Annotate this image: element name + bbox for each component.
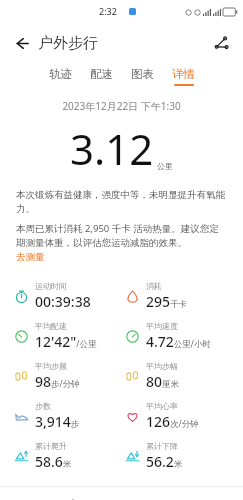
staticText: 平均步幅 — [146, 361, 178, 371]
button[interactable]: 平均步幅 — [125, 356, 237, 396]
staticText: 运动时间 — [35, 281, 67, 291]
button[interactable]: 步数 — [14, 396, 125, 436]
button[interactable]: 平均配速 — [14, 316, 125, 356]
staticText: 消耗 — [146, 281, 162, 291]
staticText: 3,914步 — [35, 412, 80, 431]
staticText: 126次/分钟 — [146, 412, 199, 431]
button[interactable]: 去测量 — [16, 251, 45, 263]
staticText: 2:32 — [99, 5, 117, 17]
staticText: 80厘米 — [146, 372, 180, 391]
staticText: 4.72公里/小时 — [146, 332, 211, 351]
button[interactable]: 运动时间 — [14, 276, 125, 316]
staticText: 3.12 — [70, 120, 154, 177]
staticText: 配速 — [90, 67, 113, 81]
staticText: 平均步频 — [35, 361, 67, 371]
button[interactable]: 消耗 — [125, 276, 237, 316]
button[interactable]: Back — [6, 28, 36, 58]
staticText: 平均心率 — [146, 401, 178, 411]
staticText: 户外步行 — [38, 34, 98, 53]
staticText: 累计下降 — [146, 441, 178, 451]
staticText: 去测量 — [16, 251, 45, 263]
staticText: 详情 — [172, 67, 195, 81]
staticText: 2023年12月22日 下午1:30 — [0, 99, 243, 113]
staticText: 98步/分钟 — [35, 372, 80, 391]
button[interactable]: Share route — [206, 28, 236, 58]
button[interactable]: 平均速度 — [125, 316, 237, 356]
button[interactable]: 配速 — [81, 65, 122, 88]
button[interactable]: 累计爬升 — [14, 436, 125, 476]
staticText: 步数 — [35, 401, 51, 411]
button[interactable]: 轨迹 — [40, 65, 81, 88]
button[interactable]: 平均心率 — [125, 396, 237, 436]
staticText: 累计爬升 — [35, 441, 67, 451]
staticText: 12'42"/公里 — [35, 332, 97, 351]
button[interactable]: 图表 — [122, 65, 163, 88]
staticText: 本周已累计消耗 2,950 千卡 活动热量。建议您定期测量体重，以评估您运动减脂… — [16, 222, 227, 249]
staticText: 56.2米 — [146, 452, 183, 471]
staticText: 58.6米 — [35, 452, 72, 471]
staticText: 图表 — [131, 67, 154, 81]
staticText: 轨迹 — [49, 67, 72, 81]
staticText: 本次锻炼有益健康，强度中等，未明显提升有氧能力。 — [16, 189, 227, 215]
staticText: 公里 — [157, 161, 173, 171]
button[interactable]: 详情 — [163, 65, 204, 88]
staticText: 平均配速 — [35, 321, 67, 331]
staticText: 平均速度 — [146, 321, 178, 331]
button[interactable]: 平均步频 — [14, 356, 125, 396]
staticText: 00:39:38 — [35, 292, 91, 311]
staticText: 295千卡 — [146, 292, 188, 311]
button[interactable]: 累计下降 — [125, 436, 237, 476]
